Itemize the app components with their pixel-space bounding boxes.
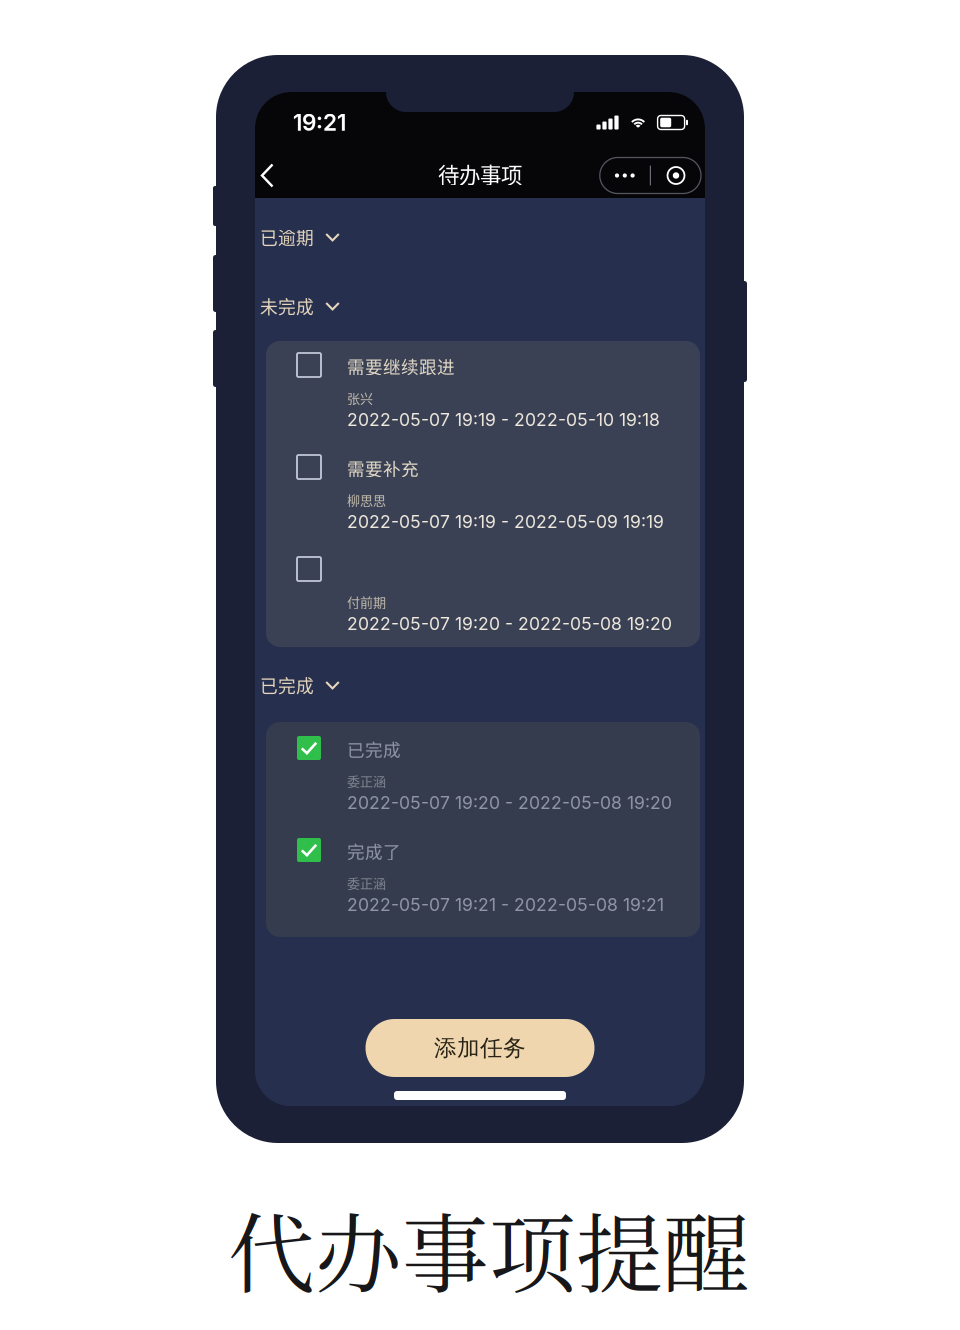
staticText: 2022-05-07 19:20 - 2022-05-08 19:20 — [347, 613, 672, 634]
staticText: 2022-05-07 19:21 - 2022-05-08 19:21 — [347, 894, 664, 915]
staticText: 委正涵 — [347, 873, 386, 892]
staticText: 需要补充 — [347, 455, 419, 480]
staticText: 19:21 — [293, 109, 346, 136]
button[interactable]: 需要补充 — [266, 455, 700, 534]
button[interactable]: 添加任务 — [365, 1019, 594, 1077]
button[interactable]: More options — [600, 157, 650, 193]
staticText: 柳思思 — [347, 490, 386, 509]
staticText: 2022-05-07 19:19 - 2022-05-09 19:19 — [347, 511, 664, 532]
staticText: 已完成 — [347, 736, 401, 761]
button[interactable]: 需要继续跟进 — [266, 353, 700, 432]
staticText: 张兴 — [347, 388, 373, 407]
staticText: 待办事项 — [438, 158, 522, 190]
button[interactable]: Back — [260, 154, 298, 196]
staticText: 完成了 — [347, 838, 401, 863]
button[interactable]: 已逾期 — [255, 225, 705, 249]
staticText: 已逾期 — [260, 224, 314, 250]
button[interactable]: 完成了 — [266, 838, 700, 917]
staticText: 付前期 — [347, 592, 386, 611]
staticText: 2022-05-07 19:19 - 2022-05-10 19:18 — [347, 409, 660, 430]
staticText: 已完成 — [260, 672, 314, 698]
staticText: 委正涵 — [347, 771, 386, 790]
staticText: 需要继续跟进 — [347, 353, 455, 378]
button[interactable]: 已完成 — [266, 736, 700, 815]
button[interactable]: Close mini program — [651, 157, 701, 193]
staticText: 2022-05-07 19:20 - 2022-05-08 19:20 — [347, 792, 672, 813]
button[interactable]: 付前期 — [266, 557, 700, 636]
staticText: 未完成 — [260, 293, 314, 319]
button[interactable]: 未完成 — [255, 294, 705, 318]
button[interactable]: 已完成 — [255, 673, 705, 697]
staticText: 代办事项提醒 — [228, 1186, 750, 1310]
staticText: 添加任务 — [434, 1034, 526, 1062]
